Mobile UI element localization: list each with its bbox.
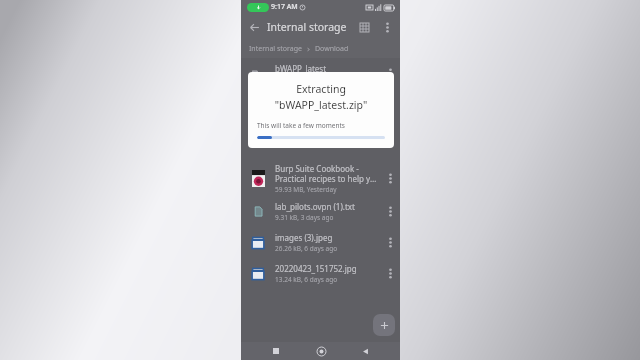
button[interactable]: More options <box>380 258 400 289</box>
button[interactable]: Grid view <box>352 15 376 39</box>
button[interactable]: More options <box>376 16 398 38</box>
staticText: Burp Suite Cookbook - Practical recipes … <box>275 163 380 184</box>
button[interactable]: More options <box>380 58 400 89</box>
button[interactable]: More options <box>380 227 400 258</box>
button[interactable]: More options <box>380 89 400 120</box>
button[interactable]: Burp Suite Cookbook - Practical recipes … <box>241 160 400 196</box>
button[interactable]: images (3).jpeg <box>241 227 400 258</box>
button[interactable]: 20220423_151752.jpg <box>241 258 400 289</box>
staticText: 9.31 kB, 3 days ago <box>275 213 334 222</box>
button[interactable]: Back <box>241 14 267 40</box>
staticText: 20220423_151752.jpg <box>275 263 357 274</box>
staticText: 9:17 AM <box>271 2 298 12</box>
staticText: 2 Oct <box>275 106 291 115</box>
button[interactable]: Download <box>315 44 349 54</box>
button[interactable]: Internal storage <box>249 44 302 54</box>
button[interactable]: downloaded_rom <box>241 89 400 120</box>
staticText: 13.24 kB, 6 days ago <box>275 275 338 284</box>
button[interactable]: bWAPP_latest <box>241 58 400 89</box>
staticText: 26.26 kB, 6 days ago <box>275 244 338 253</box>
staticText: images (3).jpeg <box>275 232 333 243</box>
staticText: "bWAPP_latest.zip" <box>257 98 385 112</box>
button[interactable]: Back <box>356 342 374 360</box>
button[interactable]: lab_pilots.ovpn (1).txt <box>241 196 400 227</box>
button[interactable]: Recents <box>267 342 285 360</box>
staticText: bWAPP_latest <box>275 63 327 74</box>
staticText: 59.93 MB, Yesterday <box>275 185 337 194</box>
button[interactable]: More options <box>380 196 400 227</box>
button[interactable]: More options <box>380 160 400 196</box>
staticText: Internal storage <box>267 20 347 34</box>
staticText: Extracting <box>257 82 385 96</box>
staticText: This will take a few moments <box>257 121 345 130</box>
staticText: lab_pilots.ovpn (1).txt <box>275 201 355 212</box>
button[interactable]: Home <box>312 342 330 360</box>
staticText: downloaded_rom <box>275 94 341 105</box>
button[interactable]: Add <box>373 314 395 336</box>
